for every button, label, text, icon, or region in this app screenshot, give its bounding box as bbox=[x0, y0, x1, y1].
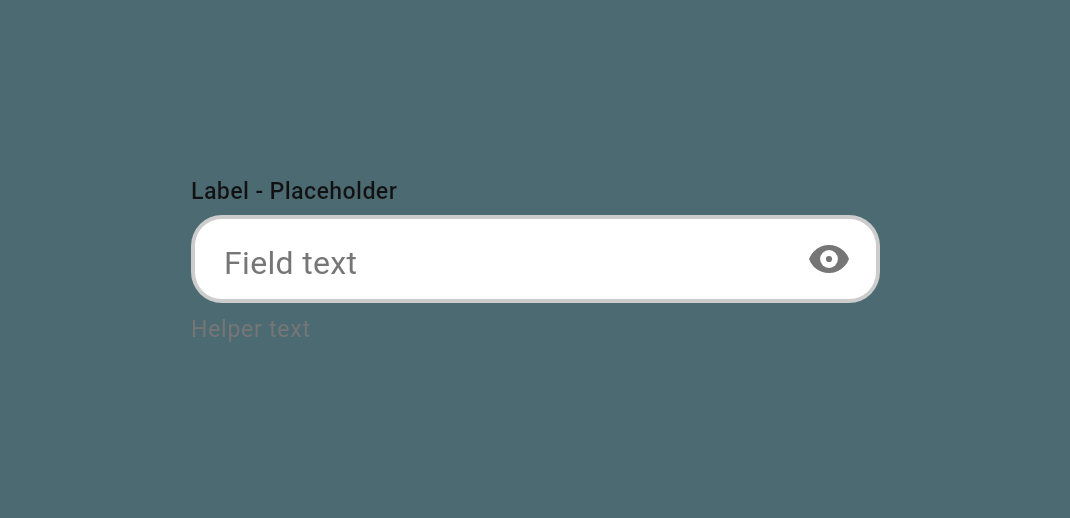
staticText: Helper text bbox=[191, 316, 311, 343]
staticText: Field text bbox=[224, 244, 358, 282]
button[interactable]: Show password bbox=[801, 231, 857, 287]
staticText: Label - Placeholder bbox=[191, 177, 398, 204]
button[interactable]: Field text bbox=[195, 219, 876, 299]
